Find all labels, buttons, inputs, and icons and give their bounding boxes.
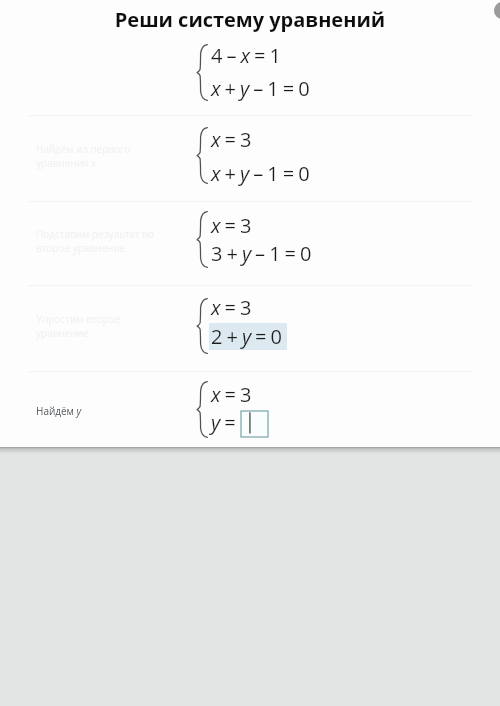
button[interactable]: Найдём y — [36, 404, 164, 418]
staticText: 3 + y – 1 = 0 — [211, 240, 312, 267]
staticText: x = 3 — [211, 126, 252, 153]
staticText: Упростим второе уравнение — [36, 312, 164, 340]
staticText: Реши систему уравнений — [0, 6, 500, 33]
button[interactable]: Подставим результат во второе уравнение — [36, 227, 164, 255]
staticText: x + y – 1 = 0 — [211, 160, 310, 187]
button[interactable]: Поле для ответа — [241, 411, 268, 437]
staticText: 4 – x = 1 — [211, 42, 281, 69]
staticText: x + y – 1 = 0 — [211, 75, 310, 102]
button[interactable]: Упростим второе уравнение — [36, 312, 164, 340]
staticText: x = 3 — [211, 212, 252, 239]
staticText: 2 + y = 0 — [211, 323, 282, 350]
button[interactable]: Профиль — [494, 2, 500, 19]
staticText: Найдём y — [36, 404, 82, 418]
button[interactable] — [209, 323, 287, 350]
staticText: x = 3 — [211, 381, 252, 408]
button[interactable]: Найдём из первого уравнения x — [36, 142, 164, 170]
staticText: x = 3 — [211, 294, 252, 321]
staticText: Подставим результат во второе уравнение — [36, 227, 164, 255]
staticText: Найдём из первого уравнения x — [36, 142, 164, 170]
staticText: y = — [211, 409, 236, 436]
